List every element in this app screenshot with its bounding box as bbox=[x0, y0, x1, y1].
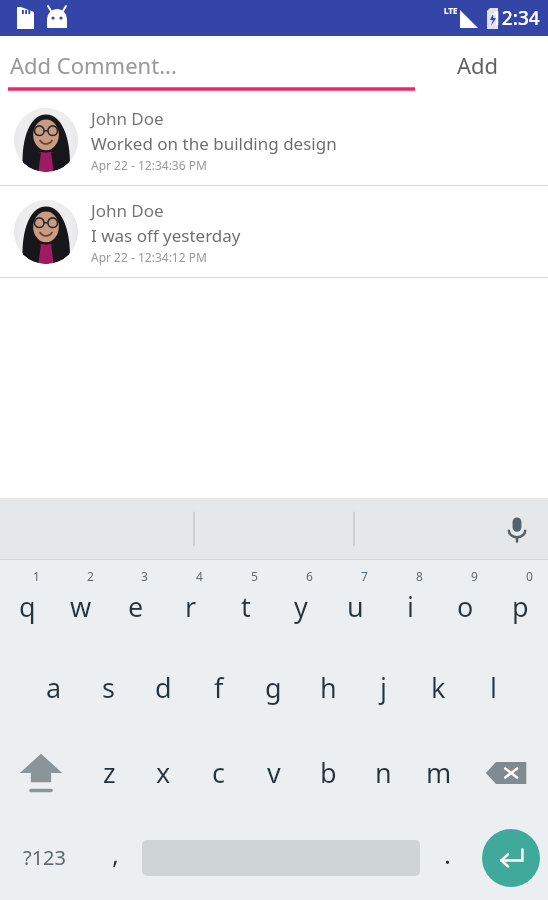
button[interactable]: 0 bbox=[493, 560, 548, 645]
button[interactable]: 2 bbox=[54, 560, 108, 645]
staticText: r bbox=[185, 588, 197, 625]
staticText: . bbox=[444, 836, 451, 871]
staticText: 5 bbox=[251, 568, 258, 584]
button[interactable]: d bbox=[136, 645, 191, 730]
staticText: c bbox=[212, 754, 225, 791]
staticText: John Doe bbox=[91, 199, 164, 222]
button[interactable]: , bbox=[88, 815, 142, 900]
button[interactable]: 8 bbox=[383, 560, 438, 645]
button[interactable]: c bbox=[191, 730, 246, 815]
staticText: l bbox=[490, 669, 497, 706]
button[interactable]: s bbox=[81, 645, 136, 730]
staticText: x bbox=[156, 754, 171, 791]
staticText: t bbox=[241, 588, 251, 625]
staticText: f bbox=[214, 669, 224, 706]
staticText: k bbox=[431, 669, 446, 706]
staticText: 6 bbox=[306, 568, 313, 584]
staticText: a bbox=[46, 669, 62, 706]
staticText: ?123 bbox=[23, 844, 66, 871]
button[interactable]: g bbox=[246, 645, 301, 730]
staticText: 7 bbox=[361, 568, 368, 584]
button[interactable]: 5 bbox=[218, 560, 273, 645]
staticText: Worked on the building design bbox=[91, 132, 337, 155]
button[interactable]: John Doe bbox=[0, 186, 548, 277]
staticText: , bbox=[112, 836, 119, 871]
button[interactable]: 1 bbox=[0, 560, 54, 645]
staticText: d bbox=[155, 669, 172, 706]
button[interactable]: h bbox=[301, 645, 356, 730]
button[interactable]: John Doe bbox=[0, 94, 548, 185]
staticText: Add Comment... bbox=[10, 50, 177, 80]
staticText: u bbox=[347, 588, 364, 625]
staticText: 2 bbox=[87, 568, 94, 584]
staticText: y bbox=[294, 588, 308, 625]
staticText: e bbox=[128, 588, 144, 625]
staticText: g bbox=[265, 669, 282, 706]
button[interactable]: m bbox=[411, 730, 466, 815]
button[interactable]: z bbox=[82, 730, 136, 815]
staticText: Apr 22 - 12:34:12 PM bbox=[91, 249, 207, 265]
button[interactable]: j bbox=[356, 645, 411, 730]
button[interactable]: . bbox=[420, 815, 474, 900]
staticText: p bbox=[512, 588, 529, 625]
button[interactable]: x bbox=[136, 730, 191, 815]
staticText: 1 bbox=[33, 568, 40, 584]
button[interactable]: Voice input bbox=[486, 498, 548, 560]
button[interactable]: Add bbox=[408, 36, 548, 94]
button[interactable]: k bbox=[411, 645, 466, 730]
staticText: j bbox=[380, 669, 387, 706]
staticText: I was off yesterday bbox=[91, 224, 241, 247]
button[interactable]: 3 bbox=[108, 560, 163, 645]
staticText: Add bbox=[457, 50, 499, 80]
button[interactable]: 7 bbox=[328, 560, 383, 645]
button[interactable]: l bbox=[466, 645, 521, 730]
staticText: b bbox=[320, 754, 337, 791]
button[interactable]: Space bbox=[142, 815, 420, 900]
staticText: v bbox=[267, 754, 281, 791]
button[interactable]: v bbox=[246, 730, 301, 815]
button[interactable]: Shift bbox=[0, 730, 82, 815]
staticText: o bbox=[457, 588, 474, 625]
staticText: John Doe bbox=[91, 107, 164, 130]
staticText: z bbox=[103, 754, 116, 791]
staticText: n bbox=[375, 754, 392, 791]
staticText: LTE bbox=[444, 5, 458, 16]
staticText: w bbox=[70, 588, 92, 625]
staticText: 9 bbox=[471, 568, 478, 584]
staticText: q bbox=[19, 588, 36, 625]
staticText: 3 bbox=[141, 568, 148, 584]
button[interactable]: 6 bbox=[273, 560, 328, 645]
staticText: 8 bbox=[416, 568, 423, 584]
button[interactable]: a bbox=[27, 645, 81, 730]
staticText: m bbox=[426, 754, 452, 791]
staticText: 12:34 bbox=[491, 5, 540, 31]
button[interactable]: Backspace bbox=[466, 730, 548, 815]
button[interactable]: f bbox=[191, 645, 246, 730]
staticText: h bbox=[320, 669, 337, 706]
staticText: Apr 22 - 12:34:36 PM bbox=[91, 157, 207, 173]
staticText: s bbox=[102, 669, 115, 706]
button[interactable]: 9 bbox=[438, 560, 493, 645]
button[interactable]: 4 bbox=[163, 560, 218, 645]
button[interactable]: ?123 bbox=[0, 815, 88, 900]
staticText: 4 bbox=[196, 568, 203, 584]
button[interactable]: Add Comment... bbox=[0, 36, 408, 94]
button[interactable]: n bbox=[356, 730, 411, 815]
button[interactable]: b bbox=[301, 730, 356, 815]
staticText: 0 bbox=[526, 568, 533, 584]
staticText: i bbox=[407, 588, 414, 625]
button[interactable]: Enter bbox=[474, 815, 548, 900]
